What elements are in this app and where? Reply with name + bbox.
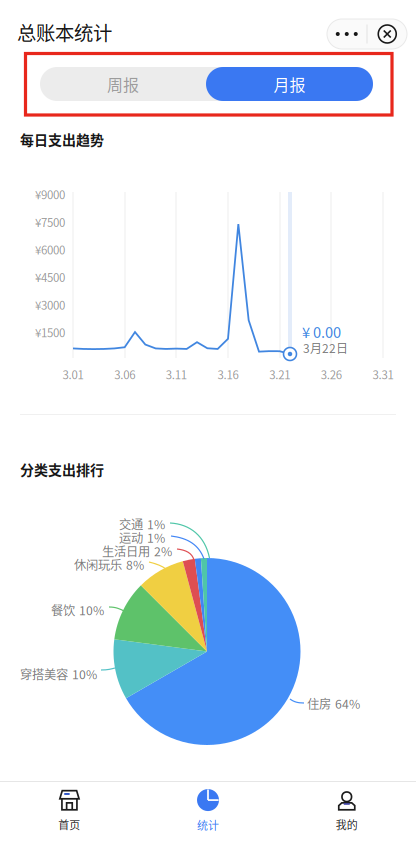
staticText: 交通 (119, 515, 143, 533)
button[interactable]: 周报 (40, 67, 206, 101)
staticText: 分类支出排行 (20, 459, 104, 479)
staticText: 3.21 (269, 366, 290, 383)
staticText: 1% (147, 515, 165, 533)
staticText: 穿搭美容 (20, 665, 68, 683)
button[interactable]: 我的 (277, 782, 416, 840)
staticText: ¥3000 (35, 296, 65, 313)
staticText: ¥9000 (35, 186, 65, 203)
staticText: 1% (147, 529, 165, 546)
staticText: ¥6000 (35, 241, 65, 258)
button[interactable]: Close (367, 19, 407, 49)
staticText: ¥ 0.00 (302, 321, 341, 342)
staticText: 2% (154, 542, 172, 560)
staticText: 我的 (336, 817, 358, 832)
staticText: 统计 (197, 817, 219, 833)
staticText: 周报 (107, 72, 139, 96)
staticText: ¥1500 (35, 324, 65, 341)
staticText: 住房 (307, 695, 331, 712)
staticText: 64% (335, 695, 360, 712)
staticText: 3.26 (321, 366, 342, 383)
staticText: 3.11 (166, 366, 187, 383)
staticText: 餐饮 (51, 601, 75, 619)
staticText: 10% (79, 601, 104, 619)
staticText: 3.06 (114, 366, 135, 383)
button[interactable]: More (327, 19, 366, 49)
staticText: 每日支出趋势 (20, 129, 104, 149)
staticText: 运动 (119, 529, 143, 546)
staticText: 首页 (58, 817, 80, 832)
staticText: 休闲玩乐 (74, 556, 122, 573)
button[interactable]: 统计 (139, 782, 277, 840)
staticText: 8% (126, 556, 144, 573)
staticText: 总账本统计 (17, 18, 112, 46)
staticText: ¥7500 (35, 214, 65, 230)
staticText: ¥4500 (35, 269, 65, 285)
button[interactable]: 首页 (0, 782, 139, 840)
staticText: 生活日用 (102, 542, 150, 560)
button[interactable]: 月报 (206, 67, 373, 101)
staticText: 10% (72, 665, 97, 683)
staticText: 3月22日 (303, 339, 348, 356)
staticText: 3.01 (62, 366, 83, 383)
staticText: 月报 (273, 72, 305, 96)
staticText: 3.31 (372, 366, 393, 383)
staticText: 3.16 (217, 366, 238, 383)
